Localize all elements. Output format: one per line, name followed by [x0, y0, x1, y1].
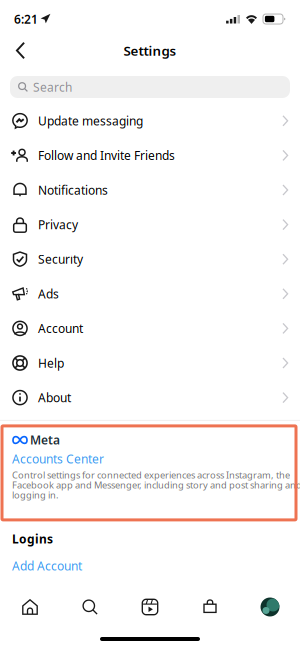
button[interactable]: About: [0, 380, 300, 415]
button[interactable]: Reels: [120, 592, 180, 622]
button[interactable]: Ads: [0, 276, 300, 311]
staticText: About: [38, 390, 71, 405]
button[interactable]: Follow and Invite Friends: [0, 138, 300, 173]
staticText: Ads: [38, 286, 59, 302]
staticText: logging in.: [12, 489, 59, 501]
button[interactable]: Shop: [180, 592, 240, 622]
button[interactable]: Privacy: [0, 207, 300, 242]
button[interactable]: Search: [10, 76, 290, 98]
staticText: Privacy: [38, 217, 78, 232]
button[interactable]: Notifications: [0, 173, 300, 207]
staticText: Notifications: [38, 182, 108, 198]
button[interactable]: Accounts Center: [12, 448, 290, 467]
staticText: Accounts Center: [12, 451, 104, 467]
button[interactable]: Profile: [240, 592, 300, 622]
staticText: Search: [33, 79, 72, 95]
staticText: Update messaging: [38, 113, 143, 129]
button[interactable]: Search: [60, 592, 120, 622]
staticText: Control settings for connected experienc…: [12, 469, 290, 481]
button[interactable]: Security: [0, 242, 300, 276]
staticText: Settings: [123, 42, 176, 59]
staticText: 6:21: [14, 11, 38, 27]
staticText: Follow and Invite Friends: [38, 147, 175, 163]
button[interactable]: Home: [0, 592, 60, 622]
button[interactable]: Add Account: [0, 546, 300, 573]
staticText: Account: [38, 320, 83, 336]
button[interactable]: Help: [0, 346, 300, 380]
staticText: Help: [38, 355, 64, 371]
staticText: Add Account: [12, 558, 82, 574]
staticText: Facebook app and Messenger, including st…: [12, 479, 300, 491]
staticText: Meta: [30, 432, 60, 448]
staticText: Security: [38, 251, 83, 267]
staticText: Logins: [12, 531, 53, 547]
button[interactable]: Account: [0, 311, 300, 346]
button[interactable]: Back: [5, 35, 37, 65]
button[interactable]: Update messaging: [0, 103, 300, 138]
